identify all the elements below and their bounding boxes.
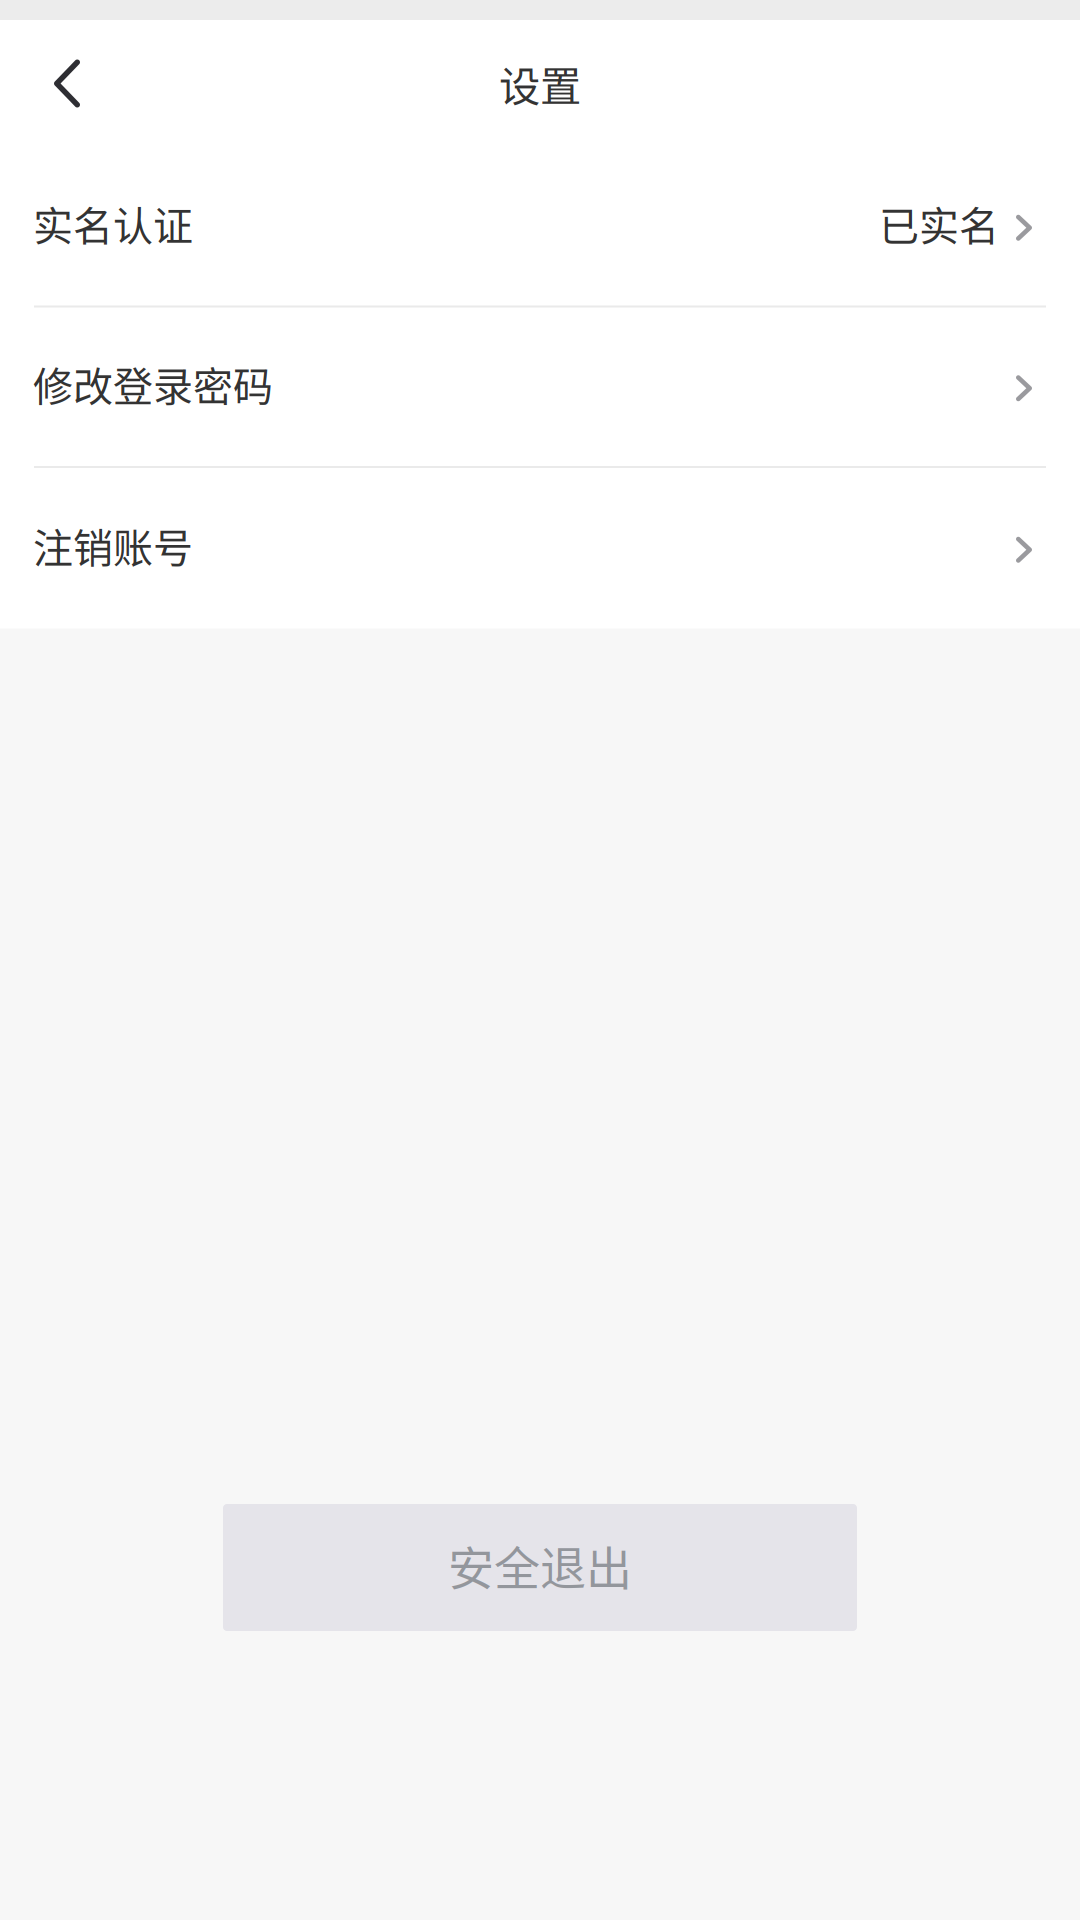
- staticText: 安全退出: [448, 1532, 632, 1598]
- button[interactable]: 注销账号: [0, 468, 1080, 628]
- staticText: 设置: [499, 54, 581, 113]
- staticText: 修改登录密码: [33, 355, 273, 413]
- button[interactable]: 修改登录密码: [0, 307, 1080, 466]
- staticText: 实名认证: [33, 194, 193, 252]
- staticText: 已实名: [879, 194, 999, 252]
- button[interactable]: 实名认证: [0, 147, 1080, 305]
- button[interactable]: Back: [0, 33, 114, 133]
- button[interactable]: 安全退出: [223, 1504, 857, 1631]
- staticText: 注销账号: [33, 516, 193, 574]
